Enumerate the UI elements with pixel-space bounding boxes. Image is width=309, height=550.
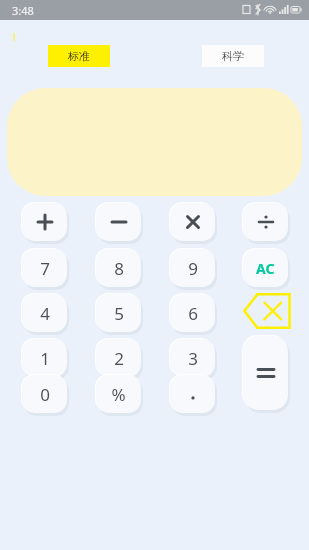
staticText: 科学 — [222, 49, 244, 63]
staticText: 0 — [40, 383, 50, 406]
button[interactable] — [170, 375, 215, 413]
staticText: AC — [256, 259, 275, 278]
button[interactable]: 1 — [22, 339, 67, 377]
button[interactable]: Plus — [22, 203, 67, 241]
staticText: 3 — [188, 347, 198, 370]
button[interactable]: 标准 — [48, 45, 110, 67]
staticText: 5 — [114, 302, 124, 325]
staticText: 1 — [40, 347, 50, 370]
button[interactable]: AC — [243, 249, 288, 287]
button[interactable]: 2 — [96, 339, 141, 377]
button[interactable]: % — [96, 375, 141, 413]
button[interactable]: Divide — [243, 203, 288, 241]
staticText: 9 — [188, 257, 198, 280]
button[interactable]: 6 — [170, 294, 215, 332]
button[interactable]: 0 — [22, 375, 67, 413]
button[interactable]: 3 — [170, 339, 215, 377]
button[interactable]: Backspace — [243, 290, 291, 332]
button[interactable]: Equals — [243, 336, 288, 410]
staticText: 6 — [188, 302, 198, 325]
staticText: 4 — [40, 302, 50, 325]
button[interactable]: Multiply — [170, 203, 215, 241]
button[interactable]: 5 — [96, 294, 141, 332]
staticText: 7 — [40, 257, 50, 280]
button[interactable]: 4 — [22, 294, 67, 332]
staticText: 2 — [114, 347, 124, 370]
button[interactable]: 科学 — [202, 45, 264, 67]
button[interactable]: 7 — [22, 249, 67, 287]
staticText: 8 — [114, 257, 124, 280]
button[interactable]: 8 — [96, 249, 141, 287]
staticText: 3:48 — [12, 3, 34, 18]
staticText: 标准 — [68, 49, 90, 63]
button[interactable]: Minus — [96, 203, 141, 241]
button[interactable]: 9 — [170, 249, 215, 287]
staticText: % — [111, 383, 126, 406]
